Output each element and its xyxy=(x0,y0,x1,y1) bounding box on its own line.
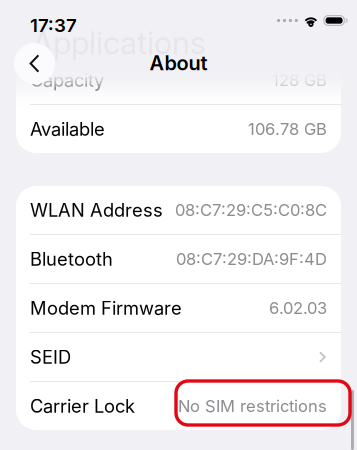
button[interactable]: Available xyxy=(16,105,341,153)
staticText: Capacity xyxy=(30,69,104,91)
staticText: 08:C7:29:DA:9F:4D xyxy=(176,249,327,269)
button[interactable]: Bluetooth xyxy=(16,235,341,283)
staticText: 128 GB xyxy=(272,70,327,90)
staticText: Applications xyxy=(32,24,206,62)
staticText: WLAN Address xyxy=(30,199,163,221)
staticText: About xyxy=(149,51,207,75)
staticText: 08:C7:29:C5:C0:8C xyxy=(175,200,327,220)
staticText: SEID xyxy=(30,346,71,368)
staticText: Available xyxy=(30,118,105,140)
button[interactable]: Capacity xyxy=(16,56,341,104)
button[interactable]: Carrier Lock xyxy=(16,382,341,430)
staticText: No SIM restrictions xyxy=(178,396,327,416)
staticText: Modem Firmware xyxy=(30,297,182,319)
staticText: 106.78 GB xyxy=(248,119,327,139)
button[interactable]: WLAN Address xyxy=(16,186,341,234)
button[interactable]: SEID xyxy=(16,333,341,381)
staticText: 17:37 xyxy=(30,14,77,37)
staticText: Bluetooth xyxy=(30,248,113,270)
button[interactable]: Back xyxy=(14,43,55,84)
staticText: 6.02.03 xyxy=(269,298,327,318)
button[interactable]: Modem Firmware xyxy=(16,284,341,332)
staticText: Carrier Lock xyxy=(30,395,135,417)
